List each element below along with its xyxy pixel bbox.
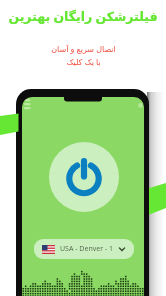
staticText: انصال سریع و آسان: [51, 43, 116, 54]
staticText: با یک کلیک: [66, 56, 101, 67]
button[interactable]: USA - Denver - 1: [34, 239, 134, 259]
button[interactable]: Connect: [49, 142, 119, 212]
staticText: فیلترشکن رایگان بهترین: [8, 8, 158, 25]
staticText: USA - Denver - 1: [60, 244, 114, 254]
